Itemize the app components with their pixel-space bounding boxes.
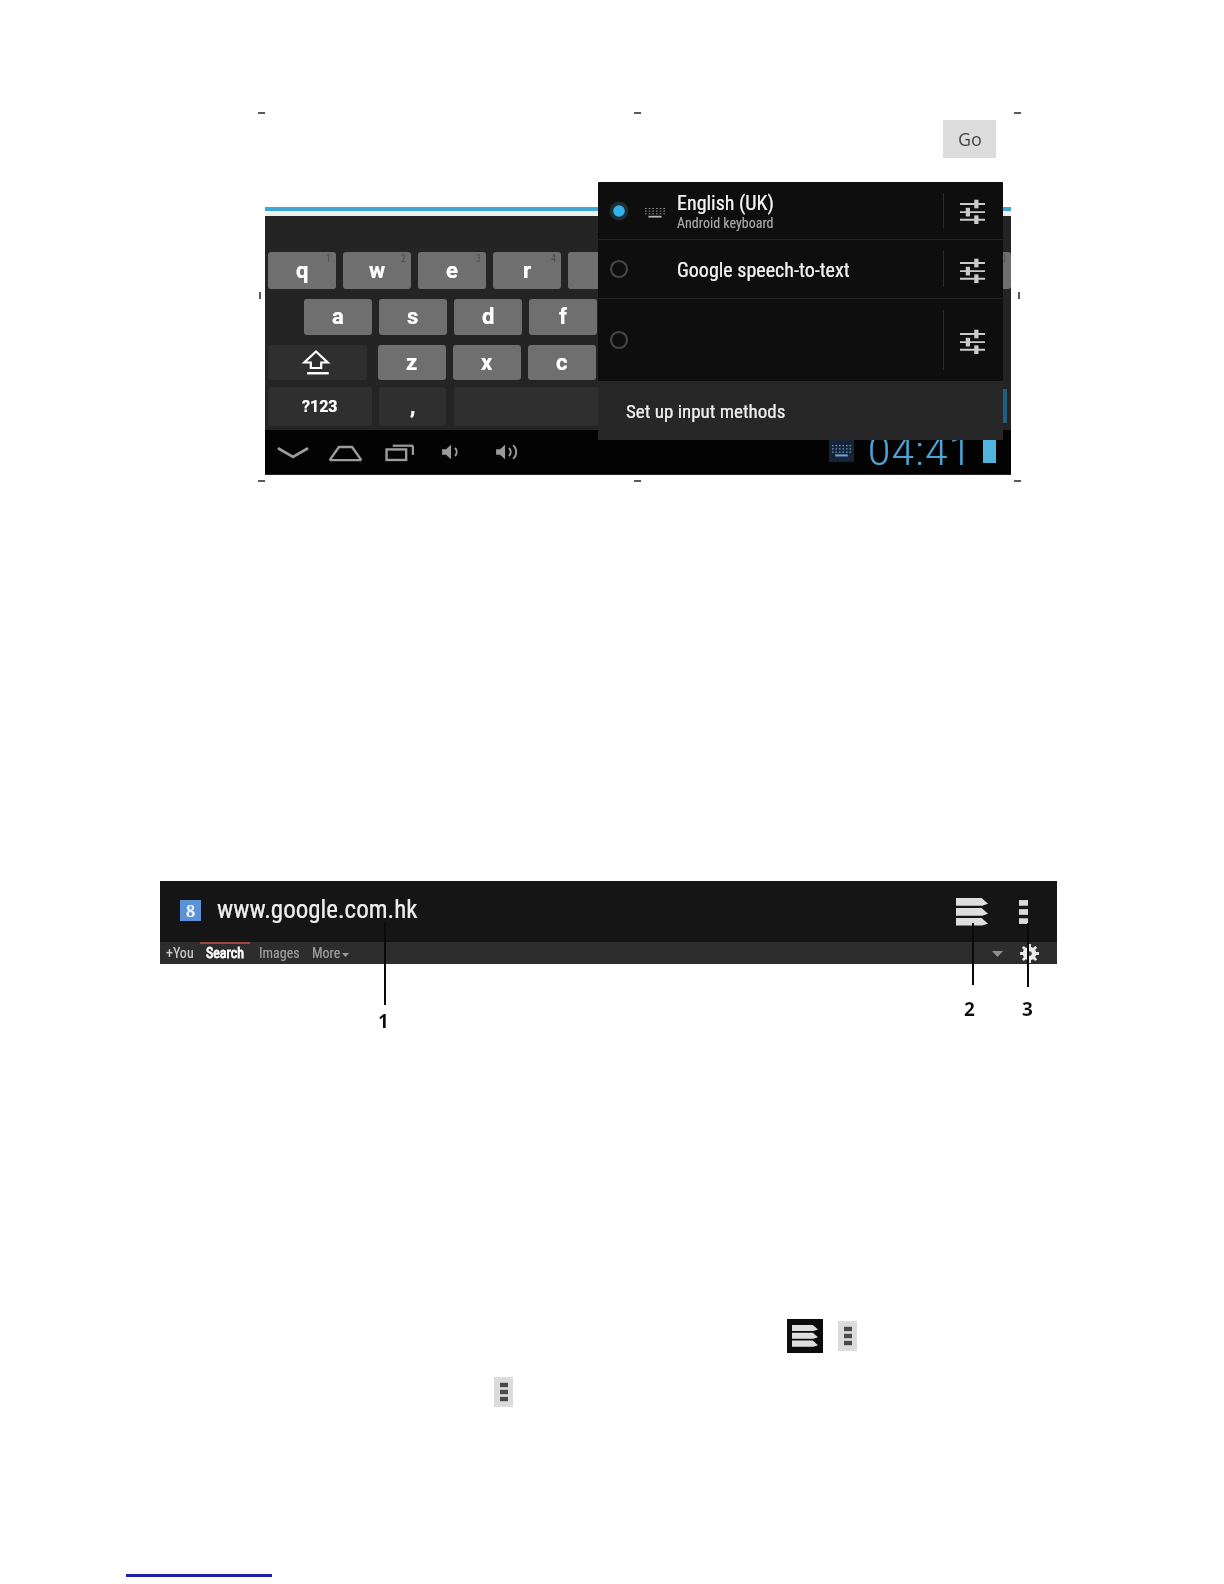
staticText: p <box>971 258 984 284</box>
button[interactable]: r <box>493 252 561 289</box>
other: Input method settings <box>960 197 985 224</box>
button[interactable]: c <box>528 345 596 380</box>
staticText: 5 <box>626 253 631 265</box>
button[interactable]: f <box>529 299 597 335</box>
staticText: 04:41 <box>868 428 973 472</box>
staticText: y <box>671 258 683 284</box>
button[interactable]: Tabs <box>953 895 991 929</box>
staticText: a <box>332 304 344 330</box>
button[interactable]: Volume up <box>489 436 529 468</box>
staticText: i <box>824 258 830 284</box>
staticText: c <box>556 350 568 376</box>
button[interactable]: Home <box>323 436 367 468</box>
button[interactable]: Go <box>943 120 996 158</box>
staticText: ?123 <box>302 397 338 416</box>
staticText: 4 <box>551 253 556 265</box>
button[interactable]: More <box>312 945 341 961</box>
staticText: Go <box>958 127 982 152</box>
staticText: 1 <box>378 1008 389 1034</box>
staticText: 1 <box>326 253 331 265</box>
button[interactable]: v <box>603 345 671 380</box>
button[interactable]: Set up input methods <box>598 381 1003 440</box>
button[interactable]: t <box>568 252 636 289</box>
button[interactable]: l <box>904 299 972 335</box>
button[interactable]: i <box>793 252 861 289</box>
staticText: 2 <box>401 253 406 265</box>
button[interactable]: z <box>378 345 446 380</box>
staticText: x <box>481 350 493 376</box>
staticText: 10 <box>996 253 1006 265</box>
staticText: 3 <box>476 253 481 265</box>
button[interactable]: g <box>604 299 672 335</box>
button[interactable]: Input method settings <box>598 299 1003 381</box>
button[interactable] <box>454 387 754 426</box>
button[interactable] <box>268 345 367 380</box>
other: Input method settings <box>960 256 985 283</box>
staticText: 3 <box>1022 996 1033 1022</box>
button[interactable]: , <box>379 387 446 426</box>
staticText: u <box>746 258 759 284</box>
staticText: Android keyboard <box>677 215 774 231</box>
staticText: z <box>406 350 418 376</box>
staticText: , <box>410 394 416 420</box>
button[interactable]: e <box>418 252 486 289</box>
staticText: www.google.com.hk <box>217 895 418 924</box>
staticText: e <box>446 258 458 284</box>
button[interactable]: +You <box>166 945 194 961</box>
other: Tabs <box>792 1325 818 1347</box>
other: Shift <box>303 350 329 375</box>
staticText: q <box>296 258 309 284</box>
staticText: s <box>407 304 419 330</box>
staticText: Set up input methods <box>626 400 786 422</box>
button[interactable]: p <box>943 252 1011 289</box>
button[interactable]: Settings <box>1016 942 1042 964</box>
other: Tabs <box>956 898 988 926</box>
button[interactable]: w <box>343 252 411 289</box>
button[interactable]: q <box>268 252 336 289</box>
button[interactable]: ?123 <box>268 387 372 426</box>
button[interactable]: u <box>718 252 786 289</box>
button[interactable]: s <box>379 299 447 335</box>
button[interactable]: Recents <box>379 436 421 468</box>
button[interactable]: Google <box>180 900 201 921</box>
staticText: 2 <box>964 996 975 1022</box>
button[interactable]: a <box>304 299 372 335</box>
button[interactable]: Volume down <box>435 436 475 468</box>
button[interactable]: English (UK) <box>598 182 1003 239</box>
other: Settings <box>1020 944 1039 963</box>
staticText: 8 <box>186 900 196 921</box>
button[interactable]: Search <box>206 945 244 961</box>
button[interactable]: y <box>643 252 711 289</box>
staticText: w <box>369 258 386 284</box>
button[interactable]: Images <box>259 945 300 961</box>
other: Input method settings <box>960 327 985 354</box>
button[interactable]: Back <box>271 436 315 468</box>
staticText: Google speech-to-text <box>677 258 850 281</box>
staticText: f <box>559 304 567 330</box>
button[interactable]: More options <box>1009 895 1037 929</box>
button[interactable]: d <box>454 299 522 335</box>
staticText: English (UK) <box>677 191 774 214</box>
button[interactable]: Google speech-to-text <box>598 240 1003 298</box>
button[interactable]: x <box>453 345 521 380</box>
